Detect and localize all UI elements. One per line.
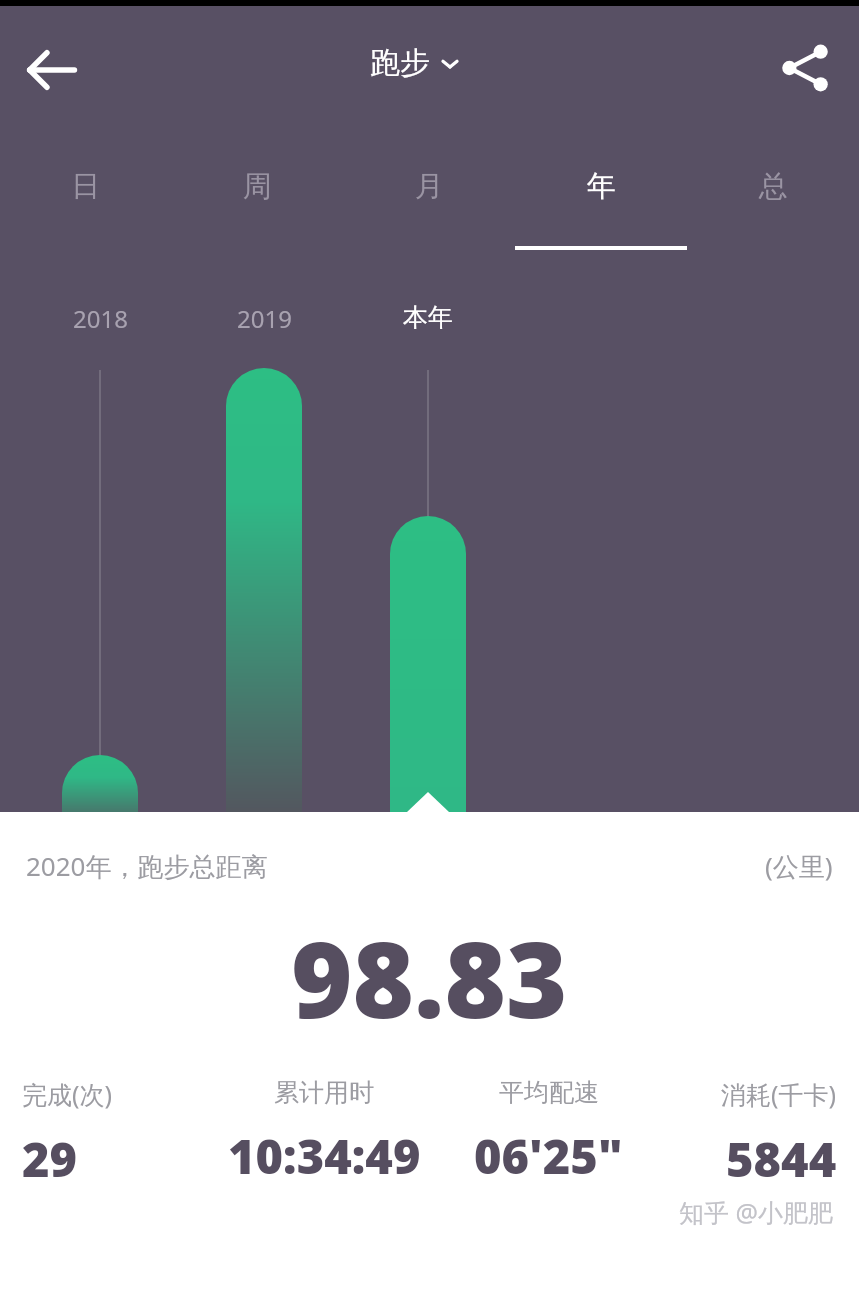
button[interactable]: Share (771, 34, 839, 102)
button[interactable]: Back (22, 38, 86, 102)
staticText: 2020年，跑步总距离 (26, 848, 268, 884)
button[interactable]: 总 (687, 168, 859, 268)
staticText: 98.83 (291, 906, 568, 1049)
staticText: 完成(次) (22, 1077, 113, 1111)
staticText: 5844 (726, 1127, 837, 1191)
button[interactable]: 月 (343, 168, 515, 268)
button[interactable]: 跑步 (370, 44, 461, 82)
staticText: 月 (415, 168, 444, 205)
button[interactable]: 年 (515, 168, 687, 268)
staticText: 日 (71, 168, 100, 205)
staticText: 06'25" (474, 1124, 623, 1188)
staticText: 10:34:49 (228, 1124, 421, 1188)
staticText: 年 (587, 168, 616, 205)
staticText: 消耗(千卡) (721, 1077, 837, 1111)
staticText: 知乎 @小肥肥 (679, 1195, 833, 1229)
staticText: 跑步 (370, 44, 430, 82)
staticText: 平均配速 (499, 1077, 599, 1108)
staticText: 周 (243, 168, 272, 205)
staticText: 累计用时 (274, 1077, 374, 1108)
button[interactable]: 日 (0, 168, 171, 268)
staticText: 29 (22, 1127, 78, 1191)
button[interactable]: 周 (171, 168, 343, 268)
staticText: 本年 (403, 302, 453, 333)
staticText: 2018 (73, 302, 128, 335)
staticText: 2019 (237, 302, 292, 335)
staticText: (公里) (765, 848, 833, 884)
staticText: 总 (759, 168, 788, 205)
